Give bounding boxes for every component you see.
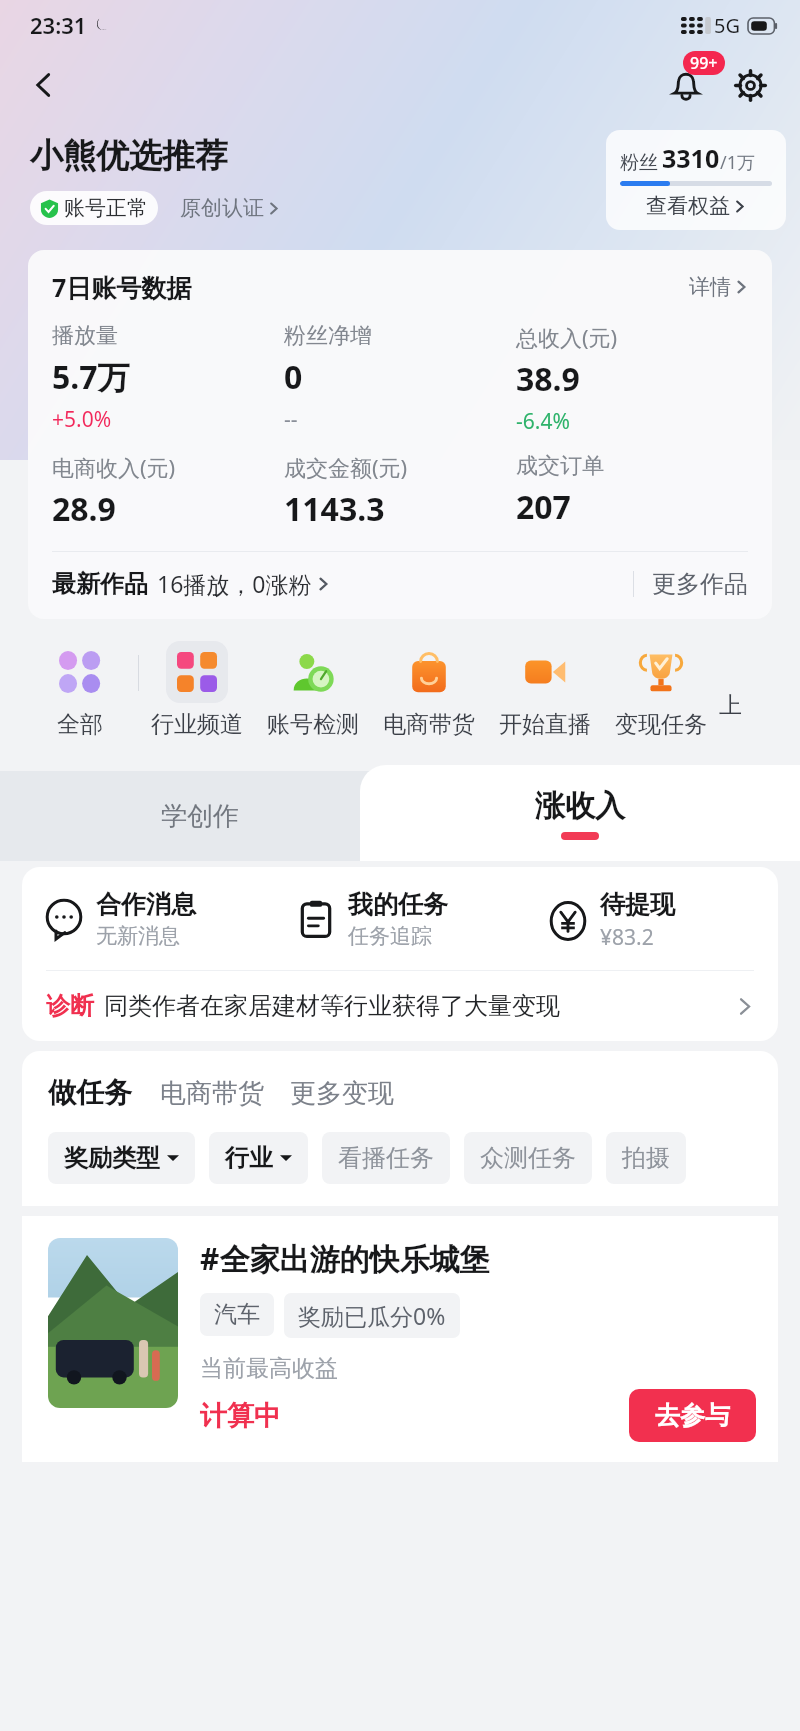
staticText: ¥83.2 bbox=[600, 923, 654, 952]
staticText: -- bbox=[284, 405, 298, 434]
staticText: 诊断 bbox=[46, 991, 94, 1021]
staticText: 行业频道 bbox=[151, 710, 243, 739]
button[interactable]: 更多作品 bbox=[652, 569, 748, 599]
button[interactable]: 全部 bbox=[22, 637, 138, 739]
button[interactable]: 变现任务 bbox=[603, 637, 719, 739]
staticText: -6.4% bbox=[516, 407, 570, 436]
button[interactable]: Settings bbox=[722, 57, 778, 113]
staticText: #全家出游的快乐城堡 bbox=[200, 1238, 490, 1279]
button[interactable]: 原创认证 bbox=[180, 195, 280, 221]
staticText: 拍摄 bbox=[622, 1143, 670, 1173]
staticText: 学创作 bbox=[161, 800, 239, 833]
staticText: 成交金额(元) bbox=[284, 452, 408, 482]
staticText: 汽车 bbox=[214, 1300, 260, 1329]
staticText: 待提现 bbox=[600, 889, 675, 920]
staticText: 计算中 bbox=[200, 1399, 281, 1433]
staticText: 5G bbox=[714, 12, 740, 39]
staticText: 28.9 bbox=[52, 487, 116, 531]
staticText: 账号正常 bbox=[64, 195, 148, 221]
button[interactable]: #全家出游的快乐城堡 bbox=[22, 1216, 778, 1462]
button[interactable]: 电商带货 bbox=[371, 637, 487, 739]
staticText: /1万 bbox=[720, 150, 755, 175]
button[interactable]: 最新作品 bbox=[52, 568, 633, 599]
staticText: 1143.3 bbox=[284, 487, 385, 531]
button[interactable]: 合作消息 bbox=[22, 889, 274, 949]
button[interactable]: 账号检测 bbox=[255, 637, 371, 739]
button[interactable]: 众测任务 bbox=[464, 1132, 592, 1184]
button[interactable]: 粉丝 bbox=[606, 130, 786, 230]
staticText: 去参与 bbox=[655, 1400, 730, 1431]
staticText: 电商收入(元) bbox=[52, 452, 176, 482]
staticText: 我的任务 bbox=[348, 889, 448, 920]
staticText: 账号检测 bbox=[267, 710, 359, 739]
button[interactable]: Notifications bbox=[656, 55, 716, 115]
button[interactable]: 涨收入 bbox=[360, 765, 800, 861]
button[interactable]: 去参与 bbox=[629, 1389, 756, 1442]
staticText: 任务追踪 bbox=[348, 923, 432, 949]
staticText: 3310 bbox=[662, 141, 720, 175]
button[interactable]: 做任务 bbox=[48, 1075, 132, 1110]
staticText: 成交订单 bbox=[516, 452, 604, 480]
button[interactable]: 看播任务 bbox=[322, 1132, 450, 1184]
staticText: 奖励已瓜分0% bbox=[298, 1300, 446, 1331]
button[interactable]: 账号正常 bbox=[30, 191, 158, 225]
button[interactable]: 待提现 bbox=[526, 889, 778, 952]
button[interactable]: 拍摄 bbox=[606, 1132, 686, 1184]
button[interactable]: 更多变现 bbox=[290, 1077, 394, 1110]
staticText: 合作消息 bbox=[96, 889, 196, 920]
button[interactable]: 行业频道 bbox=[139, 637, 255, 739]
staticText: +5.0% bbox=[52, 405, 112, 434]
staticText: 详情 bbox=[689, 274, 731, 300]
staticText: 变现任务 bbox=[615, 710, 707, 739]
staticText: 全部 bbox=[57, 710, 103, 739]
button[interactable]: 详情 bbox=[689, 274, 748, 300]
staticText: 最新作品 bbox=[52, 569, 148, 599]
staticText: 电商带货 bbox=[383, 710, 475, 739]
button[interactable]: Back bbox=[18, 59, 70, 111]
staticText: 0 bbox=[284, 355, 303, 399]
staticText: 7日账号数据 bbox=[52, 270, 192, 304]
staticText: 行业 bbox=[225, 1143, 273, 1173]
staticText: 众测任务 bbox=[480, 1143, 576, 1173]
button[interactable]: 我的任务 bbox=[274, 889, 526, 949]
staticText: 小熊优选推荐 bbox=[30, 135, 228, 177]
staticText: 无新消息 bbox=[96, 923, 180, 949]
staticText: 上 bbox=[719, 691, 742, 720]
button[interactable]: 行业 bbox=[209, 1132, 308, 1184]
button[interactable]: 电商带货 bbox=[160, 1077, 264, 1110]
staticText: 总收入(元) bbox=[516, 322, 618, 352]
staticText: 查看权益 bbox=[646, 193, 730, 219]
staticText: 23:31 bbox=[30, 10, 87, 40]
staticText: 5.7万 bbox=[52, 355, 130, 399]
staticText: 涨收入 bbox=[535, 787, 625, 825]
button[interactable]: 奖励类型 bbox=[48, 1132, 195, 1184]
button[interactable]: 学创作 bbox=[0, 771, 400, 861]
button[interactable]: 7日账号数据 bbox=[28, 250, 772, 619]
staticText: 当前最高收益 bbox=[200, 1354, 338, 1383]
staticText: 粉丝净增 bbox=[284, 322, 372, 350]
staticText: 38.9 bbox=[516, 357, 580, 401]
staticText: 奖励类型 bbox=[64, 1143, 160, 1173]
staticText: 看播任务 bbox=[338, 1143, 434, 1173]
staticText: 同类作者在家居建材等行业获得了大量变现 bbox=[104, 991, 560, 1021]
staticText: 99+ bbox=[690, 52, 718, 74]
staticText: 播放量 bbox=[52, 322, 118, 350]
staticText: 粉丝 bbox=[620, 151, 658, 175]
staticText: 16播放，0涨粉 bbox=[157, 568, 312, 599]
button[interactable]: 诊断 bbox=[22, 971, 778, 1041]
button[interactable]: 开始直播 bbox=[487, 637, 603, 739]
staticText: 原创认证 bbox=[180, 195, 264, 221]
staticText: 开始直播 bbox=[499, 710, 591, 739]
staticText: 207 bbox=[516, 485, 571, 529]
